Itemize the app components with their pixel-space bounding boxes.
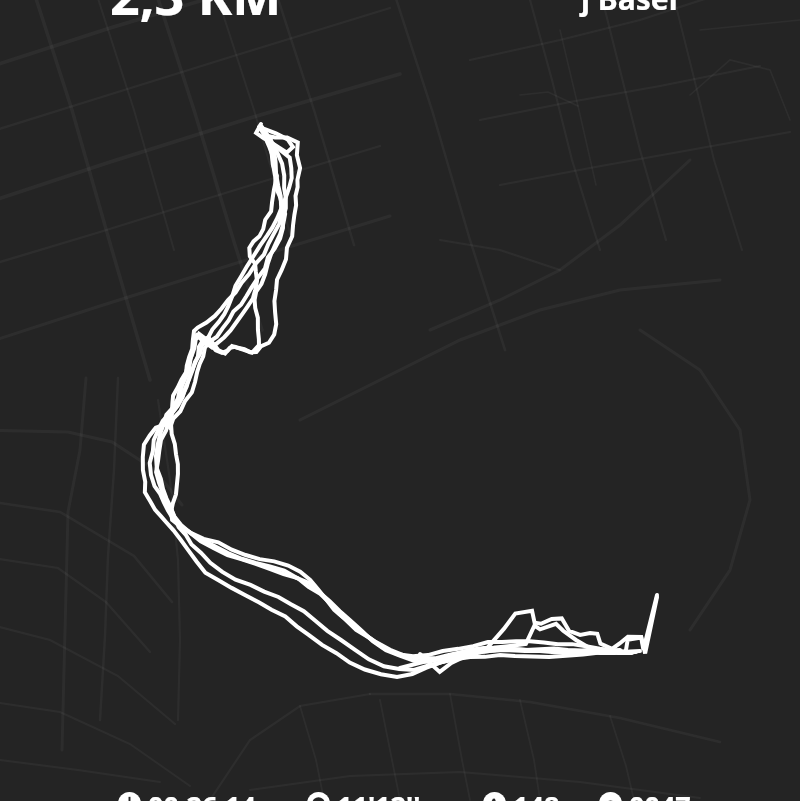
staticText: 11'12'' [337, 787, 421, 801]
button[interactable]: 11'12'' [307, 792, 421, 801]
other: 0047 [599, 792, 622, 801]
button[interactable]: j Basel [581, 0, 678, 19]
button[interactable]: 148 [483, 792, 560, 801]
staticText: j Basel [581, 0, 678, 19]
button[interactable]: 0047 [599, 792, 691, 801]
button[interactable]: 2,3 KM [110, 0, 282, 30]
staticText: 148 [513, 787, 560, 801]
staticText: 0047 [629, 787, 691, 801]
staticText: 2,3 KM [110, 0, 282, 30]
button[interactable]: 00:26:14 [118, 792, 256, 801]
other: 00:26:14 [118, 792, 141, 801]
other: 11'12'' [307, 792, 330, 801]
other: 148 [483, 792, 506, 801]
staticText: 00:26:14 [148, 787, 256, 801]
